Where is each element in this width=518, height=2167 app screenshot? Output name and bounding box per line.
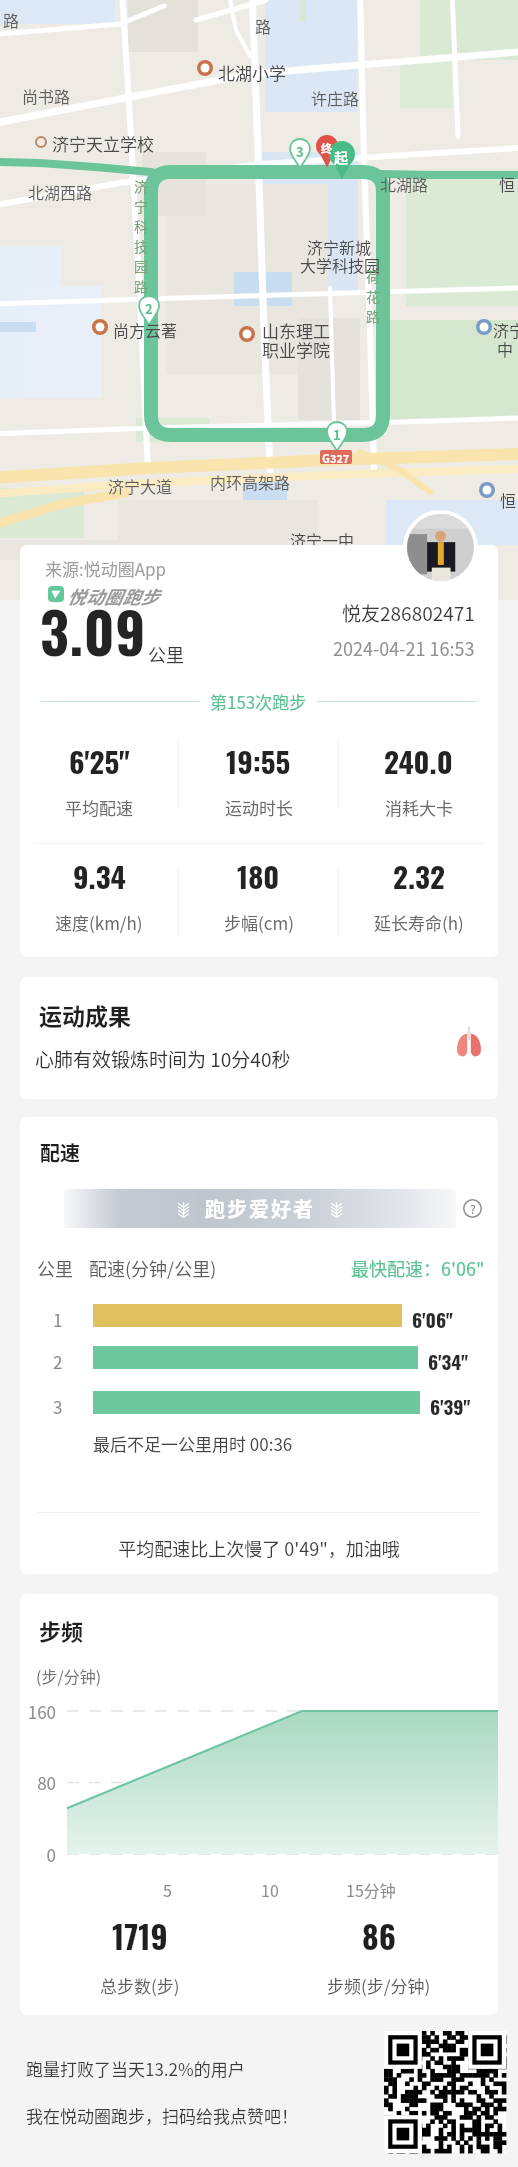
staticText: 6'25" [69,739,130,782]
staticText: (步/分钟) [36,1664,102,1687]
staticText: 步幅(cm) [224,910,294,935]
staticText: 路 [3,8,20,31]
staticText: 济宁大道 [108,474,173,497]
staticText: 5 [163,1878,172,1901]
staticText: 悦友286802471 [342,599,475,627]
staticText: 运动成果 [39,998,131,1031]
staticText: 职业学院 [262,337,330,362]
staticText: 配速 [40,1138,80,1167]
button[interactable]: Help [463,1199,482,1218]
staticText: 荷 [366,266,380,286]
staticText: 3 [53,1394,63,1417]
staticText: 科 [134,216,148,236]
staticText: 240.0 [384,739,453,782]
staticText: 3 [296,142,304,161]
staticText: 北湖小学 [218,60,286,85]
staticText: 19:55 [226,739,291,782]
staticText: 6'06" [412,1305,453,1328]
staticText: 2024-04-21 16:53 [333,635,475,661]
staticText: 10 [261,1878,279,1901]
staticText: 济 [134,176,148,196]
staticText: 内环高架路 [210,470,291,493]
staticText: 济宁新城 [307,235,372,258]
staticText: 我在悦动圈跑步，扫码给我点赞吧！ [26,2103,298,2128]
staticText: 平均配速 [65,795,133,820]
staticText: 公里 [37,1255,73,1279]
staticText: 起 [334,147,348,167]
staticText: 步频(步/分钟) [327,1973,431,1998]
staticText: 6'34" [428,1347,469,1370]
staticText: 配速(分钟/公里) [89,1255,217,1279]
staticText: 最后不足一公里用时 00:36 [93,1431,293,1456]
staticText: G327 [322,450,350,464]
staticText: 路 [366,306,380,326]
staticText: ? [470,1200,476,1217]
staticText: 15分钟 [346,1878,396,1901]
staticText: 86 [362,1912,396,1959]
staticText: 0 [20,1842,56,1867]
staticText: 步频 [39,1614,84,1646]
staticText: 1719 [112,1912,168,1959]
staticText: 速度(km/h) [55,910,143,935]
staticText: 技 [134,236,148,256]
staticText: 路 [134,276,148,296]
staticText: 消耗大卡 [385,795,453,820]
staticText: 山东理工 [262,318,330,343]
staticText: 2.32 [393,854,445,897]
staticText: 尚方云著 [113,318,178,341]
staticText: 中 [497,337,514,360]
staticText: 延长寿命(h) [374,910,464,935]
staticText: 6'39" [430,1392,471,1415]
staticText: 1 [53,1307,63,1330]
button[interactable]: User avatar [407,514,474,581]
staticText: 第153次跑步 [210,689,307,713]
staticText: 心肺有效锻炼时间为 10分40秒 [35,1045,291,1073]
staticText: 花 [366,286,380,306]
staticText: 9.34 [73,854,126,897]
staticText: 恒 [499,172,516,195]
staticText: 济宁天立学校 [52,131,154,156]
staticText: 北湖路 [380,172,429,195]
staticText: 济宁一中 [290,528,355,551]
staticText: 悦动圈跑步 [67,583,159,609]
staticText: 路 [255,14,272,37]
staticText: 园 [134,256,148,276]
staticText: 跑步爱好者 [205,1194,315,1223]
staticText: 尚书路 [22,84,71,107]
staticText: 平均配速比上次慢了 0'49"，加油哦 [20,1535,498,1561]
staticText: 北湖西路 [28,180,93,203]
staticText: 大学科技园 [300,253,381,276]
staticText: 2 [53,1349,63,1372]
staticText: 1 [333,425,341,444]
staticText: 180 [237,854,280,897]
staticText: 运动时长 [225,795,293,820]
staticText: 2 [145,299,153,318]
staticText: 跑量打败了当天13.2%的用户 [26,2056,245,2081]
staticText: 终 [321,140,332,156]
staticText: 宁 [134,196,148,216]
staticText: 许庄路 [311,86,360,109]
staticText: 恒 [500,488,517,511]
staticText: 公里 [148,641,184,667]
staticText: 3.09 [40,589,147,672]
staticText: 济宁一 [493,318,518,341]
staticText: 160 [20,1699,56,1724]
staticText: 总步数(步) [100,1973,180,1998]
staticText: 80 [20,1770,56,1795]
staticText: 最快配速：6'06" [351,1255,485,1279]
staticText: 来源:悦动圈App [45,556,167,581]
